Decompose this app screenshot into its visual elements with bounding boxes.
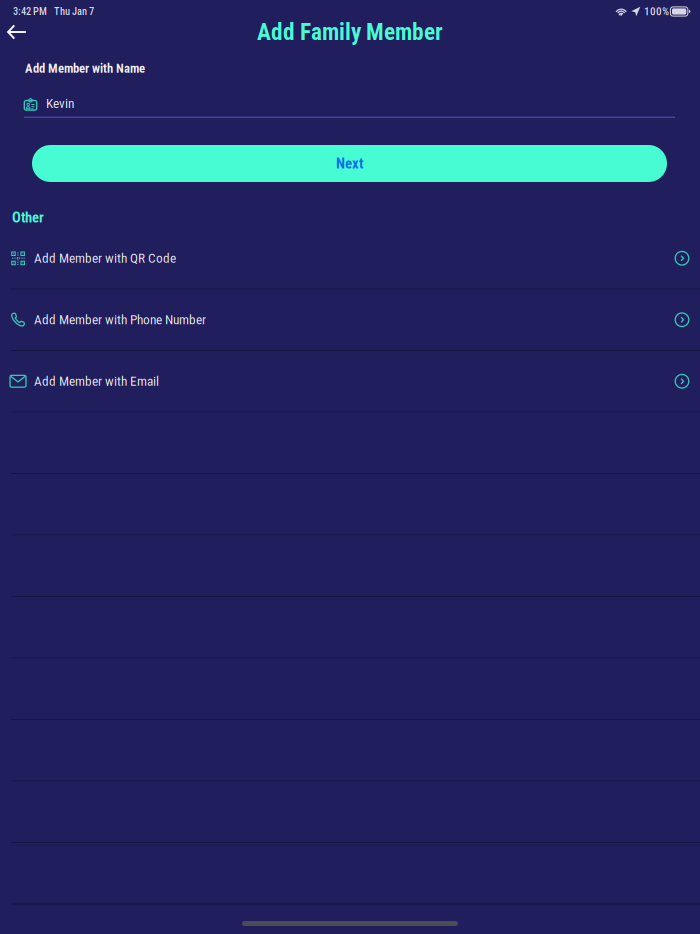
staticText: Add Family Member xyxy=(257,18,443,46)
button[interactable]: Add Member with Email xyxy=(0,351,700,412)
button[interactable]: Kevin xyxy=(24,95,675,118)
staticText: Add Member with Name xyxy=(25,61,145,76)
staticText: Other xyxy=(12,209,44,226)
staticText: Add Member with Email xyxy=(34,373,159,389)
button[interactable]: Back xyxy=(0,18,34,46)
staticText: Add Member with Phone Number xyxy=(34,312,206,327)
staticText: Kevin xyxy=(46,96,74,111)
staticText: 100% xyxy=(644,5,669,18)
button[interactable]: Add Member with Phone Number xyxy=(0,289,700,351)
staticText: 3:42 PM xyxy=(13,5,47,18)
staticText: Thu Jan 7 xyxy=(54,5,94,18)
staticText: Add Member with QR Code xyxy=(34,250,176,266)
staticText: Next xyxy=(336,155,363,172)
button[interactable]: Add Member with QR Code xyxy=(0,228,700,289)
button[interactable]: Next xyxy=(32,145,667,182)
